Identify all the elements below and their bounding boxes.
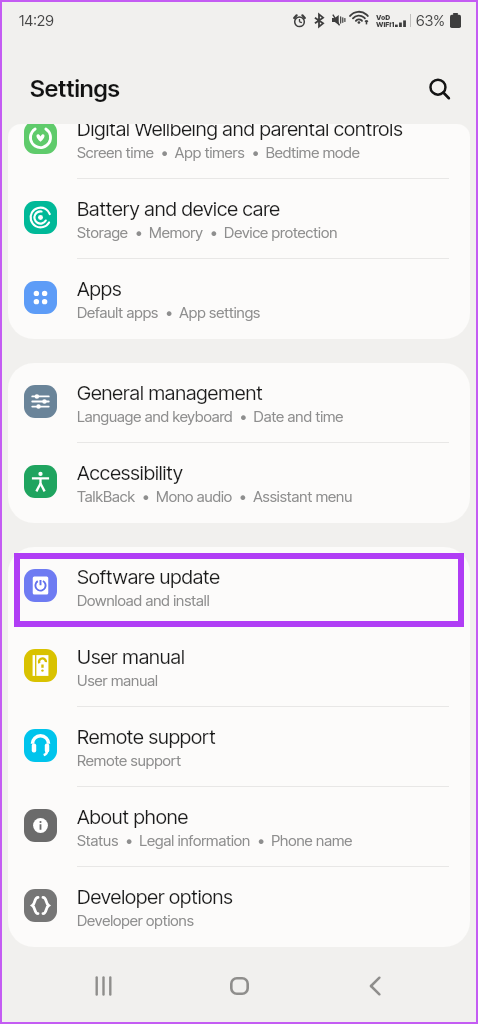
staticText: About phone — [77, 805, 189, 829]
staticText: Remote support — [77, 751, 181, 769]
staticText: 14:29 — [19, 11, 54, 29]
staticText: User manual — [77, 645, 185, 669]
button[interactable]: Accessibility — [8, 443, 470, 523]
staticText: Settings — [30, 74, 120, 103]
button[interactable]: Remote support — [8, 707, 470, 787]
staticText: Remote support — [77, 725, 216, 749]
staticText: Apps — [77, 277, 122, 301]
button[interactable]: Back — [351, 962, 399, 1010]
staticText: VoD — [376, 13, 391, 21]
button[interactable]: Battery and device care — [8, 179, 470, 259]
staticText: Battery and device care — [77, 197, 281, 221]
button[interactable]: Recent apps — [79, 962, 127, 1010]
staticText: User manual — [77, 671, 158, 689]
button[interactable]: Digital Wellbeing and parental controls — [8, 124, 470, 179]
staticText: 63% — [416, 11, 445, 29]
staticText: Storage • Memory • Device protection — [77, 223, 338, 241]
staticText: Software update — [77, 565, 220, 589]
staticText: Download and install — [77, 591, 210, 609]
staticText: Accessibility — [77, 461, 183, 485]
button[interactable]: Apps — [8, 259, 470, 339]
button[interactable]: Software update — [8, 547, 470, 627]
staticText: Digital Wellbeing and parental controls — [77, 124, 403, 141]
button[interactable]: Home — [215, 962, 263, 1010]
staticText: Status • Legal information • Phone name — [77, 831, 353, 849]
button[interactable]: Developer options — [8, 867, 470, 947]
button[interactable]: About phone — [8, 787, 470, 867]
staticText: TalkBack • Mono audio • Assistant menu — [77, 487, 353, 505]
staticText: Screen time • App timers • Bedtime mode — [77, 143, 360, 161]
staticText: Language and keyboard • Date and time — [77, 407, 344, 425]
staticText: General management — [77, 381, 263, 405]
staticText: Developer options — [77, 885, 233, 909]
button[interactable]: User manual — [8, 627, 470, 707]
staticText: WiFi1 — [376, 20, 395, 28]
button[interactable]: Search — [417, 67, 461, 111]
button[interactable]: General management — [8, 363, 470, 443]
staticText: Default apps • App settings — [77, 303, 261, 321]
staticText: Developer options — [77, 911, 194, 929]
